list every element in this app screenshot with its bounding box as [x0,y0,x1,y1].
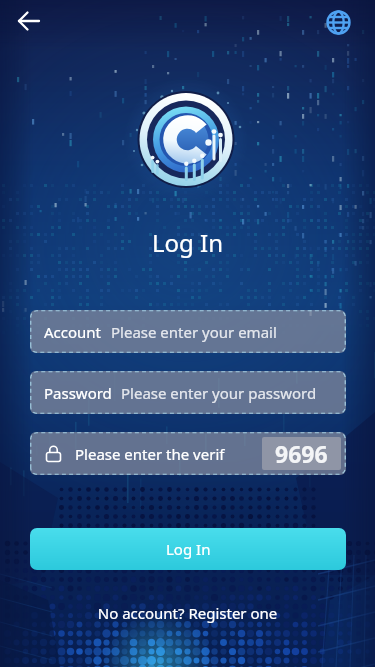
staticText: Please enter your email [111,322,277,342]
button[interactable] [9,2,49,42]
button[interactable]: Password [30,371,346,414]
button[interactable]: Log In [30,528,346,570]
staticText: 9696 [275,438,328,469]
staticText: Password [44,383,112,403]
button[interactable] [318,2,358,42]
button[interactable]: Account [30,310,346,353]
staticText: Please enter your password [121,383,317,403]
staticText: Log In [166,539,211,559]
staticText: Please enter the verif [75,444,232,464]
button[interactable]: Please enter the verif [30,432,346,475]
staticText: Log In [0,226,375,259]
button[interactable]: No account? Register one [0,603,375,623]
staticText: Account [44,322,102,342]
